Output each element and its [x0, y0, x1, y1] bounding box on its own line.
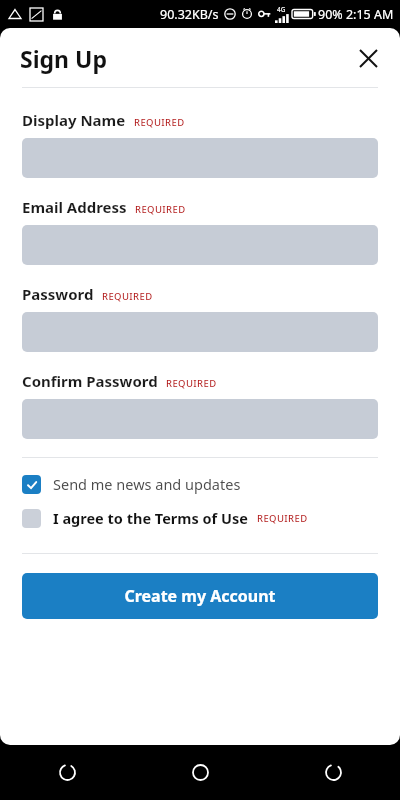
staticText: 4G: [277, 5, 286, 14]
staticText: REQUIRED: [135, 203, 186, 216]
staticText: REQUIRED: [102, 290, 153, 303]
staticText: Sign Up: [20, 43, 107, 74]
staticText: REQUIRED: [134, 116, 185, 129]
staticText: 90.32KB/s: [160, 6, 219, 23]
staticText: REQUIRED: [166, 377, 217, 390]
staticText: Create my Account: [124, 585, 276, 607]
button[interactable]: Close: [348, 38, 388, 78]
staticText: Confirm Password: [22, 371, 158, 391]
staticText: Send me news and updates: [53, 474, 241, 494]
staticText: Email Address: [22, 197, 127, 217]
staticText: Password: [22, 284, 94, 304]
staticText: Display Name: [22, 110, 126, 130]
button[interactable]: Send me news and updates: [22, 474, 378, 494]
button[interactable]: I agree to the Terms of Use: [22, 508, 378, 528]
button[interactable]: Recent apps: [0, 745, 134, 800]
button[interactable]: Create my Account: [22, 573, 378, 619]
staticText: I agree to the Terms of Use: [53, 508, 248, 528]
staticText: 90% 2:15 AM: [318, 6, 394, 23]
staticText: REQUIRED: [257, 512, 308, 525]
button[interactable]: Home: [134, 745, 267, 800]
button[interactable]: Back: [267, 745, 400, 800]
